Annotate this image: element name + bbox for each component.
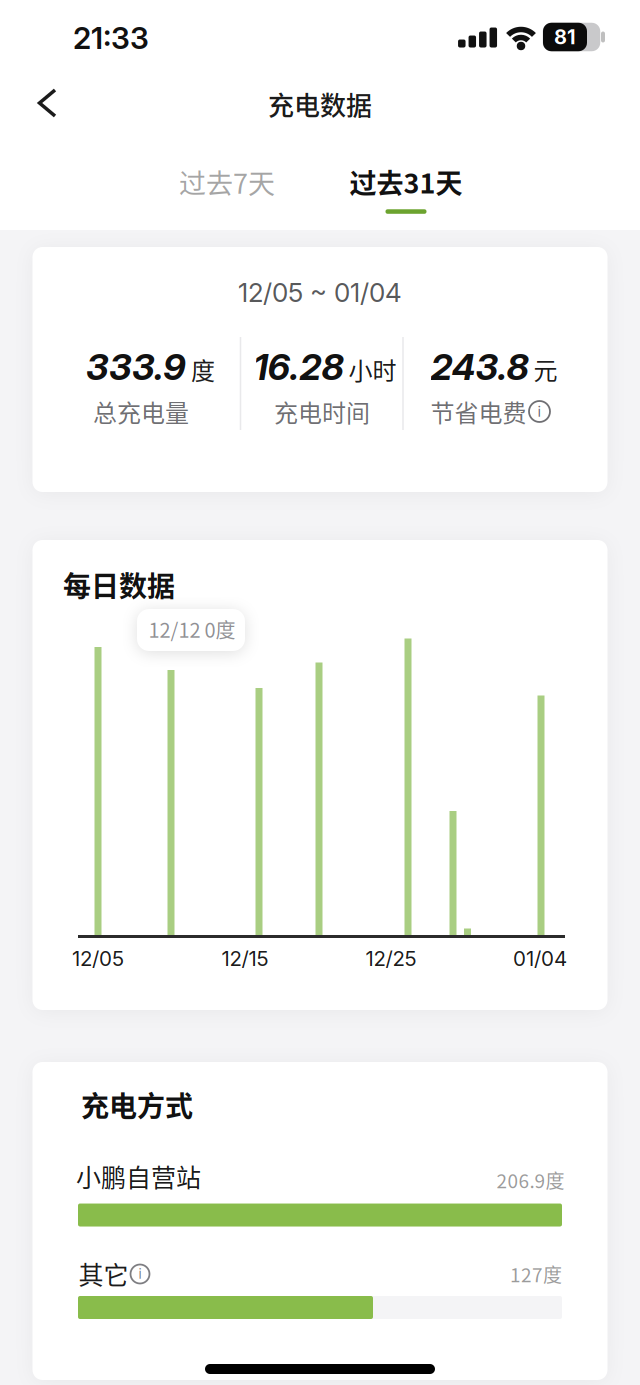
staticText: 81	[554, 25, 576, 49]
staticText: 01/04	[513, 946, 567, 971]
staticText: 节省电费	[430, 394, 526, 429]
staticText: 12/15	[221, 946, 268, 971]
staticText: i	[537, 403, 541, 420]
staticText: 小鹏自营站	[76, 1158, 201, 1194]
button[interactable]: 过去7天	[167, 152, 287, 212]
staticText: 每日数据	[63, 564, 175, 605]
staticText: 小时	[348, 352, 396, 387]
staticText: 总充电量	[93, 394, 189, 429]
staticText: 充电方式	[81, 1084, 193, 1125]
staticText: 12/05 ~ 01/04	[238, 277, 402, 308]
staticText: 其它	[78, 1255, 128, 1292]
staticText: 16.28	[253, 345, 343, 389]
staticText: 12/05	[72, 946, 124, 971]
button[interactable]: 其它说明	[130, 1264, 149, 1283]
button[interactable]: 节省电费说明	[529, 401, 550, 422]
staticText: 过去31天	[349, 162, 462, 201]
staticText: 充电时间	[274, 394, 370, 429]
staticText: 206.9度	[496, 1166, 564, 1194]
button[interactable]: 过去31天	[349, 162, 462, 214]
staticText: 12/12 0度	[148, 614, 235, 643]
staticText: 充电数据	[268, 85, 372, 123]
staticText: 21:33	[73, 20, 149, 56]
staticText: 过去7天	[179, 162, 275, 202]
staticText: 12/25	[365, 946, 416, 971]
staticText: 243.8	[430, 345, 528, 389]
staticText: 333.9	[86, 345, 186, 389]
staticText: 127度	[510, 1260, 562, 1288]
button[interactable]: 返回	[24, 80, 70, 126]
staticText: 度	[191, 352, 215, 387]
staticText: i	[138, 1266, 141, 1282]
staticText: 元	[533, 352, 557, 387]
